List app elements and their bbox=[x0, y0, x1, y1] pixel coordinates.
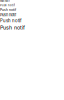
staticText: Push notif bbox=[0, 13, 16, 17]
staticText: Push notif bbox=[0, 24, 25, 31]
staticText: Push notif bbox=[0, 0, 10, 3]
staticText: Push notif bbox=[0, 4, 15, 7]
staticText: Push notif bbox=[0, 18, 22, 23]
staticText: Push notif bbox=[0, 8, 16, 12]
